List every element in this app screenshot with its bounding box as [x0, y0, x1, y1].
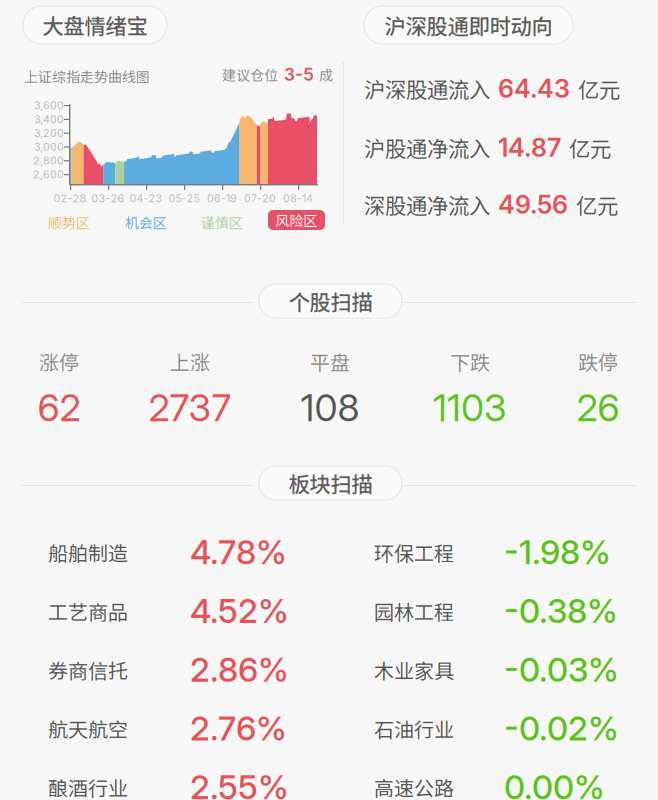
staticText: 4.52% [190, 591, 289, 631]
button[interactable]: 大盘情绪宝 [23, 6, 167, 44]
staticText: 14.87 [498, 132, 561, 163]
staticText: -0.38% [504, 591, 618, 631]
staticText: 2.86% [190, 649, 289, 690]
staticText: 02-28 [53, 192, 86, 205]
button[interactable]: 风险区 [268, 210, 325, 230]
staticText: 沪深股通流入 [364, 73, 490, 104]
staticText: 成 [319, 64, 333, 85]
staticText: 108 [300, 385, 359, 430]
staticText: 顺势区 [48, 212, 90, 232]
staticText: 工艺商品 [48, 596, 128, 625]
staticText: 07-20 [244, 192, 276, 205]
staticText: 建议仓位 [222, 64, 278, 85]
staticText: 环保工程 [374, 538, 454, 567]
staticText: 亿元 [578, 73, 620, 104]
staticText: 机会区 [125, 212, 167, 232]
staticText: 08-14 [283, 192, 313, 205]
staticText: -0.03% [504, 649, 619, 690]
staticText: 园林工程 [374, 596, 454, 625]
staticText: 风险区 [275, 210, 317, 230]
staticText: 3,600 [34, 99, 64, 112]
button[interactable]: 个股扫描 [259, 284, 402, 318]
staticText: 49.56 [498, 189, 568, 220]
staticText: 亿元 [569, 132, 611, 163]
staticText: 高速公路 [374, 773, 454, 800]
staticText: 3,000 [34, 140, 64, 153]
staticText: 下跌 [450, 347, 490, 376]
staticText: 62 [37, 385, 80, 430]
staticText: 2.76% [190, 708, 287, 748]
staticText: 26 [576, 385, 619, 430]
staticText: 石油行业 [374, 714, 454, 743]
staticText: 2,600 [33, 168, 64, 181]
staticText: 沪深股通即时动向 [384, 10, 552, 40]
staticText: 0.00% [504, 767, 605, 800]
staticText: 06-19 [207, 192, 237, 205]
staticText: 64.43 [498, 73, 570, 104]
staticText: 3,400 [34, 113, 64, 126]
staticText: 沪股通净流入 [364, 132, 490, 163]
staticText: 3-5 [284, 64, 314, 85]
staticText: 大盘情绪宝 [42, 10, 147, 40]
staticText: 跌停 [578, 347, 618, 376]
staticText: -1.98% [504, 532, 611, 572]
staticText: 券商信托 [48, 655, 128, 684]
button[interactable]: 板块扫描 [259, 466, 402, 500]
button[interactable]: 沪深股通即时动向 [364, 6, 573, 44]
staticText: 03-26 [91, 192, 124, 205]
staticText: 谨慎区 [201, 212, 243, 232]
staticText: 涨停 [39, 347, 79, 376]
staticText: 2.55% [190, 767, 289, 800]
staticText: 上证综指走势曲线图 [24, 66, 150, 86]
staticText: 板块扫描 [288, 468, 372, 498]
staticText: 深股通净流入 [364, 189, 490, 220]
staticText: 个股扫描 [288, 286, 372, 316]
staticText: 亿元 [576, 189, 618, 220]
staticText: 2737 [148, 385, 231, 430]
staticText: 木业家具 [374, 655, 454, 684]
staticText: 平盘 [310, 347, 350, 376]
staticText: 上涨 [170, 347, 210, 376]
staticText: 05-25 [168, 192, 199, 205]
staticText: 2,800 [33, 154, 64, 167]
staticText: 船舶制造 [48, 538, 128, 567]
staticText: 04-23 [129, 192, 162, 205]
staticText: 3,200 [34, 127, 64, 139]
staticText: 1103 [433, 385, 507, 430]
staticText: 酿酒行业 [48, 773, 128, 800]
staticText: -0.02% [504, 708, 619, 748]
staticText: 4.78% [190, 532, 287, 572]
staticText: 航天航空 [48, 714, 128, 743]
